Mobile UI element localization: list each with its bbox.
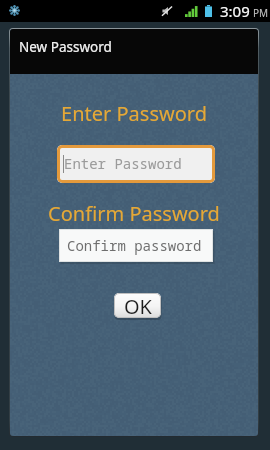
button[interactable]: Confirm password [59, 229, 213, 262]
staticText: Confirm Password [10, 200, 258, 227]
staticText: Confirm password [67, 236, 202, 255]
staticText: OK [124, 293, 152, 318]
staticText: Enter Password [64, 154, 182, 173]
other: Signal strength [185, 6, 198, 17]
other: Battery [205, 5, 212, 17]
staticText: PM [253, 6, 269, 20]
staticText: 3:09 [220, 1, 250, 21]
other: Notification [9, 5, 20, 16]
staticText: New Password [19, 38, 112, 56]
button[interactable]: Enter Password [57, 145, 215, 183]
button[interactable]: New Password [10, 29, 258, 74]
staticText: Enter Password [10, 100, 258, 127]
button[interactable]: OK [114, 293, 161, 318]
other: Silent mode [161, 5, 173, 17]
